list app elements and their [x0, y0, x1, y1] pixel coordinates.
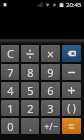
button[interactable]: . — [21, 118, 39, 134]
staticText: ( ) — [67, 101, 76, 115]
button[interactable]: 2 — [21, 100, 39, 116]
staticText: 2 — [27, 101, 34, 116]
button[interactable]: 0 — [1, 118, 19, 134]
staticText: +/− — [44, 120, 58, 132]
button[interactable]: +/− — [41, 118, 60, 134]
staticText: C — [7, 46, 14, 61]
button[interactable] — [21, 45, 39, 62]
staticText: × — [47, 46, 54, 62]
button[interactable]: 8 — [21, 64, 39, 80]
staticText: 4 — [7, 83, 14, 98]
button[interactable]: Equals — [62, 118, 81, 134]
button[interactable]: 1 — [1, 100, 19, 116]
button[interactable]: 7 — [1, 64, 19, 80]
button[interactable]: 6 — [41, 82, 60, 98]
staticText: 9 — [47, 65, 54, 80]
button[interactable]: 9 — [41, 64, 60, 80]
button[interactable]: × — [41, 45, 60, 62]
button[interactable]: 4 — [1, 82, 19, 98]
staticText: . — [29, 119, 32, 134]
button[interactable]: C — [1, 45, 19, 62]
staticText: 8 — [27, 65, 34, 80]
button[interactable]: 5 — [21, 82, 39, 98]
button[interactable]: ( ) — [62, 100, 81, 116]
button[interactable]: Backspace — [62, 45, 81, 62]
button[interactable] — [62, 64, 81, 80]
staticText: 6 — [47, 83, 54, 98]
button[interactable] — [62, 82, 81, 98]
staticText: 3 — [47, 101, 54, 116]
staticText: 1 — [7, 101, 14, 116]
button[interactable]: 3 — [41, 100, 60, 116]
staticText: 20:45 — [66, 1, 82, 9]
staticText: 7 — [7, 65, 14, 80]
staticText: 0 — [7, 119, 14, 134]
staticText: 5 — [27, 83, 34, 98]
